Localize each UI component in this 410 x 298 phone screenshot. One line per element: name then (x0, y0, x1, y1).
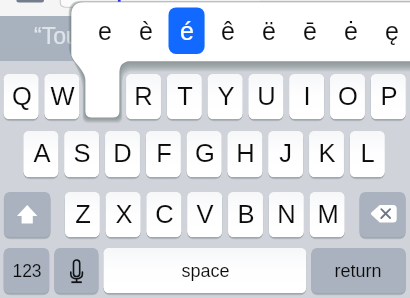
button[interactable] (147, 192, 182, 237)
button[interactable] (125, 6, 166, 52)
button[interactable]: Space (104, 248, 306, 293)
button[interactable] (45, 74, 80, 119)
button[interactable] (146, 131, 181, 177)
staticText: X (115, 200, 133, 228)
button[interactable]: Dictation (55, 248, 99, 293)
button[interactable] (248, 6, 289, 52)
staticText: M (317, 200, 339, 228)
staticText: Y (217, 82, 235, 110)
button[interactable] (207, 6, 248, 52)
staticText: space (181, 261, 230, 281)
button[interactable]: Return (311, 248, 405, 293)
staticText: ê (221, 17, 235, 45)
button[interactable] (309, 131, 344, 177)
button[interactable] (187, 131, 222, 177)
button[interactable] (289, 6, 330, 52)
staticText: ē (303, 17, 317, 45)
button[interactable] (371, 74, 406, 119)
staticText: B (237, 200, 255, 228)
button[interactable]: Numbers (4, 248, 49, 293)
staticText: G (195, 139, 215, 167)
button[interactable] (106, 192, 141, 237)
button[interactable] (228, 131, 263, 177)
button[interactable] (269, 192, 304, 237)
button[interactable] (167, 74, 202, 119)
button[interactable] (350, 131, 385, 177)
button[interactable]: Shift (4, 192, 50, 237)
staticText: N (277, 200, 296, 228)
staticText: W (50, 82, 75, 110)
staticText: J (279, 139, 292, 167)
staticText: “Tou (34, 23, 79, 49)
button[interactable] (268, 131, 303, 177)
staticText: ė (344, 17, 358, 45)
staticText: A (33, 139, 51, 167)
button[interactable] (228, 192, 263, 237)
staticText: Z (75, 200, 91, 228)
button[interactable] (85, 74, 120, 119)
button[interactable] (310, 192, 345, 237)
staticText: è (139, 17, 153, 45)
button[interactable] (4, 74, 39, 119)
button[interactable] (84, 6, 125, 52)
button[interactable] (105, 131, 140, 177)
staticText: L (360, 139, 375, 167)
button[interactable] (65, 192, 100, 237)
staticText: D (113, 139, 132, 167)
button[interactable] (166, 6, 207, 52)
button[interactable] (208, 74, 243, 119)
button[interactable] (24, 131, 59, 177)
staticText: 123 (12, 261, 42, 281)
staticText: H (236, 139, 255, 167)
staticText: ë (262, 17, 276, 45)
button[interactable] (330, 6, 371, 52)
button[interactable] (249, 74, 284, 119)
staticText: U (257, 82, 276, 110)
staticText: I (303, 82, 311, 110)
staticText: R (134, 82, 153, 110)
staticText: C (155, 200, 174, 228)
staticText: K (318, 139, 336, 167)
staticText: ę (385, 17, 399, 45)
button[interactable]: Backspace (360, 192, 406, 237)
staticText: O (338, 82, 358, 110)
staticText: return (334, 261, 382, 281)
staticText: S (73, 139, 91, 167)
button[interactable] (371, 6, 410, 52)
staticText: P (380, 82, 398, 110)
staticText: Q (12, 82, 32, 110)
staticText: F (156, 139, 172, 167)
button[interactable] (126, 74, 161, 119)
button[interactable] (187, 192, 222, 237)
button[interactable] (289, 74, 324, 119)
staticText: T (177, 82, 193, 110)
button[interactable] (330, 74, 365, 119)
staticText: V (196, 200, 214, 228)
staticText: é (180, 17, 194, 45)
staticText: e (98, 17, 112, 45)
button[interactable] (64, 131, 99, 177)
